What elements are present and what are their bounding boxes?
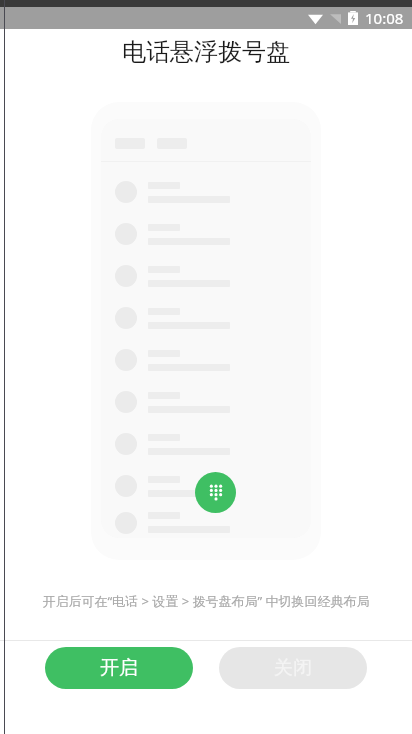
staticText: 关闭 [274,656,312,680]
staticText: 开启 [100,656,138,680]
button[interactable]: 开启 [45,647,193,689]
staticText: 10:08 [365,8,404,28]
button[interactable]: 关闭 [219,647,367,689]
staticText: 开启后可在“电话 > 设置 > 拨号盘布局” 中切换回经典布局 [42,592,370,610]
button[interactable]: 拨号盘 [195,472,236,513]
staticText: 电话悬浮拨号盘 [122,37,290,67]
